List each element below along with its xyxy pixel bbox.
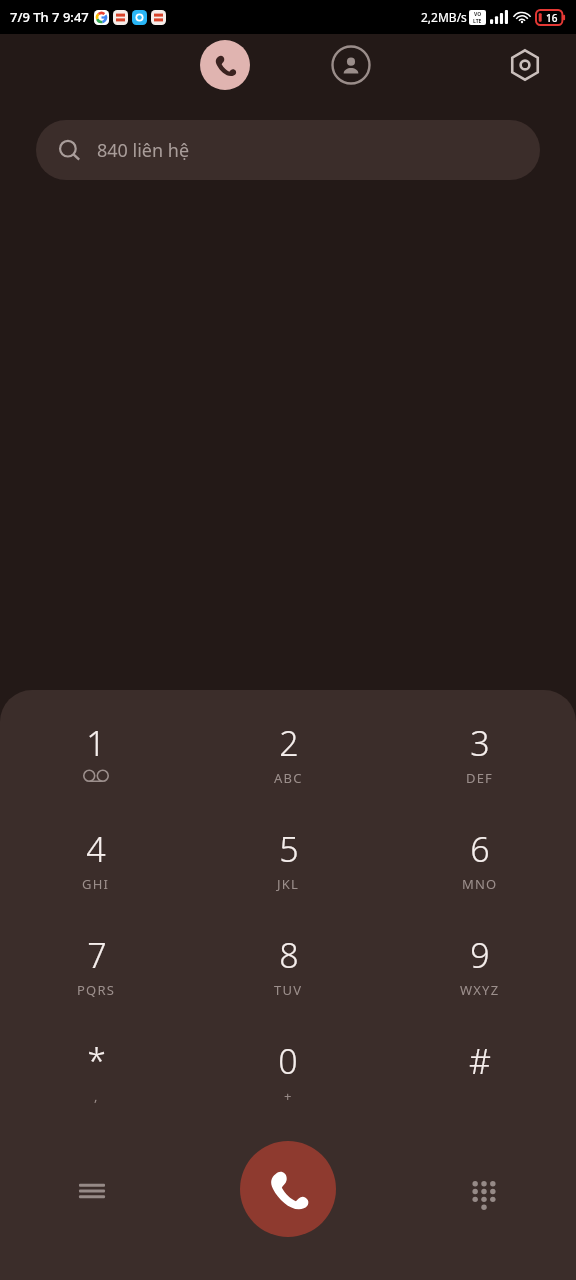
button[interactable]: 1 [0, 712, 192, 818]
staticText: GHI [82, 875, 110, 893]
button[interactable]: # [384, 1030, 576, 1136]
staticText: 3 [470, 720, 490, 766]
staticText: JKL [277, 875, 300, 893]
staticText: 2,2MB/s [421, 9, 467, 25]
button[interactable]: 5 [192, 818, 384, 924]
staticText: + [284, 1087, 293, 1105]
button[interactable]: 9 [384, 924, 576, 1030]
staticText: 7 [87, 932, 107, 978]
staticText: VO [474, 11, 482, 18]
button[interactable]: Tùy chọn khác [66, 1164, 118, 1216]
staticText: * [87, 1038, 106, 1084]
button[interactable]: 0 [192, 1030, 384, 1136]
staticText: 7/9 Th 7 9:47 [10, 8, 89, 26]
staticText: 4 [86, 826, 106, 872]
staticText: 16 [546, 11, 558, 25]
staticText: 6 [470, 826, 490, 872]
staticText: , [94, 1087, 99, 1105]
staticText: TUV [274, 981, 303, 999]
button[interactable]: * [0, 1030, 192, 1136]
button[interactable]: 840 liên hệ [36, 120, 540, 180]
button[interactable]: 8 [192, 924, 384, 1030]
staticText: 1 [86, 720, 106, 766]
staticText: PQRS [77, 981, 116, 999]
button[interactable]: Bàn phím [200, 40, 250, 90]
staticText: 5 [279, 826, 299, 872]
staticText: DEF [466, 769, 494, 787]
staticText: MNO [462, 875, 498, 893]
staticText: # [469, 1038, 491, 1084]
staticText: 8 [279, 932, 299, 978]
button[interactable]: Cài đặt [500, 40, 550, 90]
staticText: 2 [279, 720, 299, 766]
staticText: LTE [473, 18, 482, 25]
staticText: ABC [274, 769, 303, 787]
button[interactable]: Bàn phím số [458, 1164, 510, 1216]
button[interactable]: 3 [384, 712, 576, 818]
button[interactable]: Danh bạ [326, 40, 376, 90]
button[interactable]: Gọi [240, 1141, 336, 1237]
staticText: WXYZ [460, 981, 500, 999]
staticText: 9 [470, 932, 490, 978]
button[interactable]: 7 [0, 924, 192, 1030]
staticText: 0 [278, 1038, 298, 1084]
button[interactable]: 2 [192, 712, 384, 818]
button[interactable]: 4 [0, 818, 192, 924]
staticText: 840 liên hệ [97, 138, 190, 163]
button[interactable]: 6 [384, 818, 576, 924]
